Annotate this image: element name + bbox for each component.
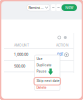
staticText: New <box>65 5 73 10</box>
staticText: Duplicate <box>36 63 51 67</box>
staticText: ACTION <box>56 43 69 47</box>
button[interactable]: Pause <box>34 69 60 74</box>
staticText: Delete <box>36 86 46 89</box>
button[interactable]: Duplicate <box>34 62 60 68</box>
staticText: 1,000.00 <box>14 52 28 57</box>
button[interactable]: Skip next date <box>34 78 60 83</box>
button[interactable]: Use <box>34 56 60 61</box>
button[interactable]: Delete <box>34 85 60 90</box>
staticText: Skip next date <box>36 79 59 83</box>
button[interactable]: Edit <box>57 52 63 57</box>
staticText: Use <box>36 57 42 61</box>
staticText: Pause <box>36 69 46 73</box>
button[interactable]: Sort <box>56 4 61 11</box>
button[interactable]: Row options <box>64 53 68 57</box>
button[interactable]: New <box>61 4 77 11</box>
button[interactable]: Filter <box>51 4 56 11</box>
staticText: AMOUNT <box>14 43 29 47</box>
staticText: 500.00 <box>14 64 25 68</box>
staticText: Edit <box>57 52 63 57</box>
button[interactable]: Reminder List <box>26 4 50 11</box>
staticText: Reminder List <box>28 5 44 10</box>
